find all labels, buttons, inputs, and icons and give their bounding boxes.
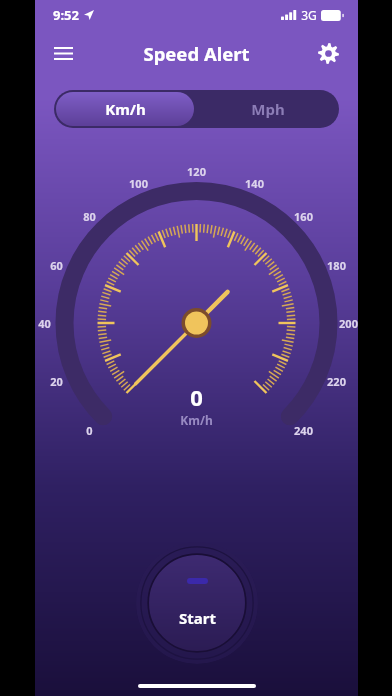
staticText: Km/h	[180, 412, 213, 428]
staticText: 3G	[301, 7, 317, 23]
staticText: 9:52	[53, 6, 79, 24]
button[interactable]: Settings	[308, 33, 348, 73]
staticText: 120	[187, 164, 206, 179]
staticText: 240	[294, 423, 313, 438]
staticText: 160	[294, 209, 313, 224]
staticText: Mph	[251, 99, 285, 119]
staticText: Km/h	[105, 99, 146, 119]
button[interactable]: Menu	[43, 33, 83, 73]
staticText: 140	[245, 176, 264, 191]
staticText: 0	[190, 382, 203, 412]
staticText: Speed Alert	[143, 41, 250, 66]
button[interactable]: Mph	[196, 90, 339, 128]
staticText: 180	[327, 258, 346, 273]
button[interactable]: Km/h	[56, 92, 194, 126]
staticText: 80	[83, 209, 96, 224]
staticText: 20	[50, 374, 63, 389]
staticText: 200	[339, 316, 358, 331]
staticText: 220	[327, 374, 346, 389]
staticText: 100	[129, 176, 148, 191]
button[interactable]: Start	[136, 542, 258, 664]
staticText: 40	[38, 316, 51, 331]
staticText: 60	[50, 258, 63, 273]
staticText: 0	[86, 423, 93, 438]
staticText: Start	[179, 608, 216, 628]
